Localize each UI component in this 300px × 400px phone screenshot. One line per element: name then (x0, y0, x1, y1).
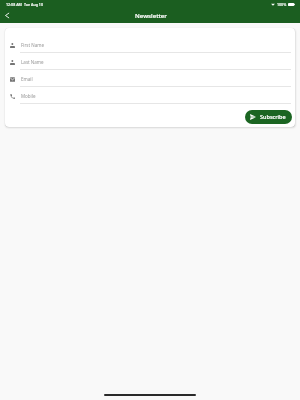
staticText: Last Name (21, 59, 44, 65)
staticText: 100% (277, 2, 287, 7)
staticText: Email (21, 76, 33, 82)
button[interactable]: Email (5, 70, 295, 87)
staticText: Newsletter (135, 11, 167, 19)
staticText: 12:08 AM (6, 2, 22, 7)
staticText: Mobile (21, 93, 36, 99)
button[interactable]: Last Name (5, 53, 295, 70)
staticText: Subscribe (260, 113, 286, 120)
staticText: Tue Aug 10 (24, 2, 43, 7)
button[interactable]: Back (0, 8, 13, 22)
button[interactable]: First Name (5, 36, 295, 53)
staticText: First Name (21, 42, 44, 48)
button[interactable]: Subscribe (245, 110, 292, 124)
button[interactable]: Mobile (5, 87, 295, 104)
